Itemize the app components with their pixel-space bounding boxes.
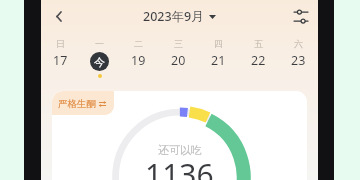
staticText: 17: [53, 52, 68, 69]
staticText: 19: [131, 52, 146, 69]
staticText: 2023年9月: [143, 8, 204, 25]
staticText: 23: [291, 52, 306, 69]
staticText: 严格生酮: [58, 98, 96, 110]
staticText: 一: [95, 38, 104, 49]
staticText: 今: [94, 55, 105, 69]
button[interactable]: 一: [80, 36, 119, 82]
staticText: 20: [171, 52, 186, 69]
button[interactable]: 四: [198, 36, 238, 82]
staticText: 二: [134, 38, 143, 49]
button[interactable]: 日: [41, 36, 80, 82]
staticText: 1136: [145, 154, 214, 180]
button[interactable]: 六: [278, 36, 318, 82]
button[interactable]: 五: [238, 36, 278, 82]
button[interactable]: 严格生酮: [52, 91, 114, 115]
staticText: 五: [254, 38, 263, 49]
staticText: 还可以吃: [158, 143, 202, 157]
staticText: 三: [174, 38, 183, 49]
staticText: 六: [294, 38, 303, 49]
staticText: 日: [56, 38, 65, 49]
button[interactable]: Back: [47, 4, 71, 28]
staticText: 21: [211, 52, 226, 69]
staticText: 22: [251, 52, 266, 69]
button[interactable]: 2023年9月: [143, 8, 216, 25]
button[interactable]: 三: [158, 36, 198, 82]
staticText: 四: [214, 38, 223, 49]
button[interactable]: 二: [119, 36, 158, 82]
button[interactable]: Filter: [289, 4, 313, 28]
